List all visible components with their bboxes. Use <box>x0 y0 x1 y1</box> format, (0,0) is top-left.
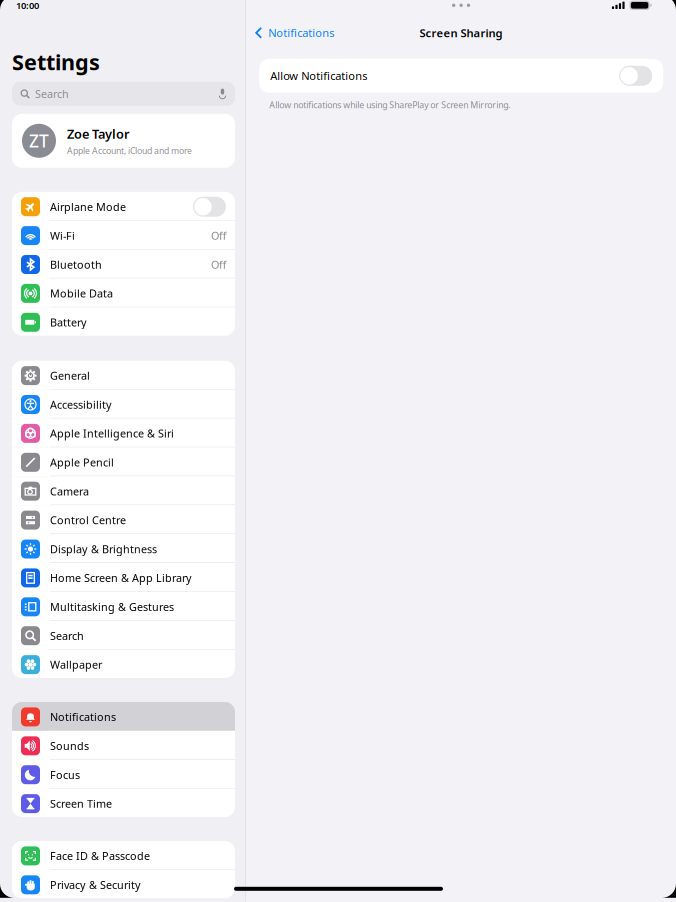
button[interactable]: Wallpaper <box>12 650 235 678</box>
button[interactable]: Allow Notifications <box>259 59 663 93</box>
staticText: Wi-Fi <box>50 228 75 243</box>
staticText: Apple Pencil <box>50 455 114 470</box>
staticText: Airplane Mode <box>50 199 126 214</box>
staticText: Bluetooth <box>50 257 102 272</box>
button[interactable]: Apple Pencil <box>12 447 235 476</box>
button[interactable]: Notifications <box>12 702 235 731</box>
button[interactable]: Home Screen & App Library <box>12 563 235 592</box>
staticText: Search <box>35 86 69 101</box>
button[interactable]: Airplane Mode <box>12 192 235 221</box>
button[interactable]: Display & Brightness <box>12 534 235 563</box>
staticText: Sounds <box>50 738 89 753</box>
staticText: Off <box>211 228 226 243</box>
staticText: Search <box>50 628 84 643</box>
button[interactable]: Privacy & Security <box>12 870 235 898</box>
staticText: Control Centre <box>50 513 126 527</box>
staticText: Notifications <box>50 709 116 724</box>
staticText: Settings <box>12 47 100 76</box>
button[interactable]: Camera <box>12 476 235 505</box>
staticText: Allow notifications while using SharePla… <box>269 99 510 111</box>
staticText: Screen Sharing <box>420 25 503 40</box>
staticText: Screen Time <box>50 796 112 811</box>
button[interactable]: General <box>12 361 235 390</box>
button[interactable]: Notifications <box>246 22 334 44</box>
button[interactable]: Screen Time <box>12 789 235 817</box>
button[interactable]: Control Centre <box>12 505 235 534</box>
button[interactable]: Accessibility <box>12 390 235 418</box>
staticText: Mobile Data <box>50 286 113 301</box>
staticText: ZT <box>29 129 49 153</box>
staticText: Accessibility <box>50 397 112 412</box>
button[interactable]: Search <box>12 621 235 650</box>
button[interactable]: Bluetooth <box>12 250 235 278</box>
staticText: Display & Brightness <box>50 542 157 556</box>
button[interactable]: Focus <box>12 760 235 789</box>
staticText: Privacy & Security <box>50 877 141 892</box>
staticText: Focus <box>50 767 80 782</box>
button[interactable]: ZT <box>12 114 235 168</box>
staticText: Zoe Taylor <box>67 125 130 143</box>
button[interactable]: Sounds <box>12 731 235 760</box>
button[interactable]: Multitasking & Gestures <box>12 592 235 621</box>
staticText: Apple Account, iCloud and more <box>67 145 192 156</box>
staticText: Multitasking & Gestures <box>50 599 174 614</box>
button[interactable]: Wi-Fi <box>12 221 235 250</box>
staticText: General <box>50 368 90 383</box>
staticText: Battery <box>50 315 87 330</box>
staticText: Allow Notifications <box>270 68 367 83</box>
staticText: Face ID & Passcode <box>50 848 150 863</box>
staticText: Off <box>211 257 226 272</box>
button[interactable]: Battery <box>12 307 235 336</box>
staticText: Camera <box>50 484 89 498</box>
staticText: Apple Intelligence & Siri <box>50 426 174 441</box>
button[interactable]: Face ID & Passcode <box>12 841 235 870</box>
button[interactable]: Mobile Data <box>12 278 235 307</box>
staticText: 10:00 <box>16 0 39 12</box>
staticText: Wallpaper <box>50 657 102 672</box>
staticText: Notifications <box>268 25 334 40</box>
button[interactable]: Apple Intelligence & Siri <box>12 418 235 447</box>
staticText: Home Screen & App Library <box>50 570 192 585</box>
